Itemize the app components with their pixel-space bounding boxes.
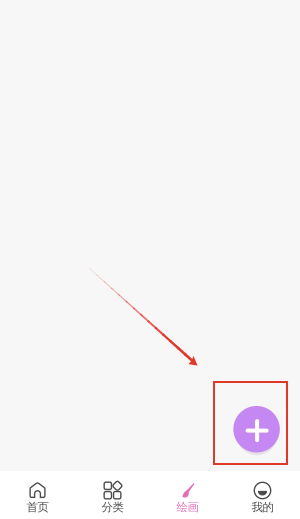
button[interactable]: 绘画 — [150, 471, 225, 519]
staticText: 首页 — [26, 500, 48, 514]
button[interactable]: 新建 — [231, 403, 283, 455]
staticText: 我的 — [251, 500, 273, 514]
button[interactable]: 我的 — [225, 471, 300, 519]
staticText: 绘画 — [176, 500, 198, 514]
button[interactable]: 首页 — [0, 471, 75, 519]
staticText: 分类 — [101, 500, 123, 514]
button[interactable]: 分类 — [75, 471, 150, 519]
